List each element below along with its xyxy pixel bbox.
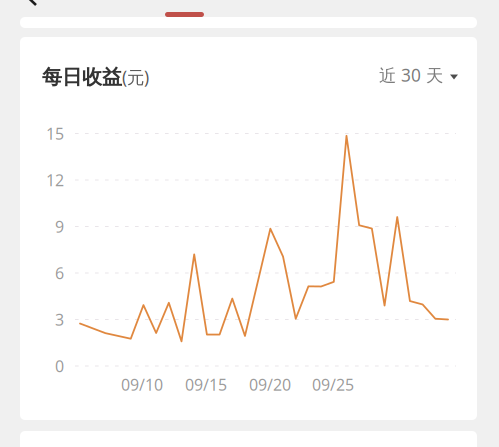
button[interactable]: Back — [27, 0, 36, 5]
staticText: 3 — [55, 309, 64, 330]
staticText: 0 — [55, 355, 64, 377]
staticText: 09/20 — [249, 374, 291, 395]
staticText: 09/15 — [185, 374, 227, 395]
staticText: 15 — [46, 123, 64, 144]
staticText: 6 — [55, 262, 64, 284]
staticText: 12 — [46, 169, 64, 191]
staticText: 近 30 天 — [379, 63, 443, 86]
staticText: 9 — [55, 216, 64, 237]
button[interactable]: 每日收益 tab — [165, 12, 204, 17]
staticText: 每日收益 — [42, 65, 122, 89]
button[interactable]: 近 30 天 — [330, 63, 458, 86]
staticText: (元) — [122, 65, 149, 88]
staticText: 09/10 — [121, 374, 163, 395]
staticText: 09/25 — [312, 374, 354, 395]
